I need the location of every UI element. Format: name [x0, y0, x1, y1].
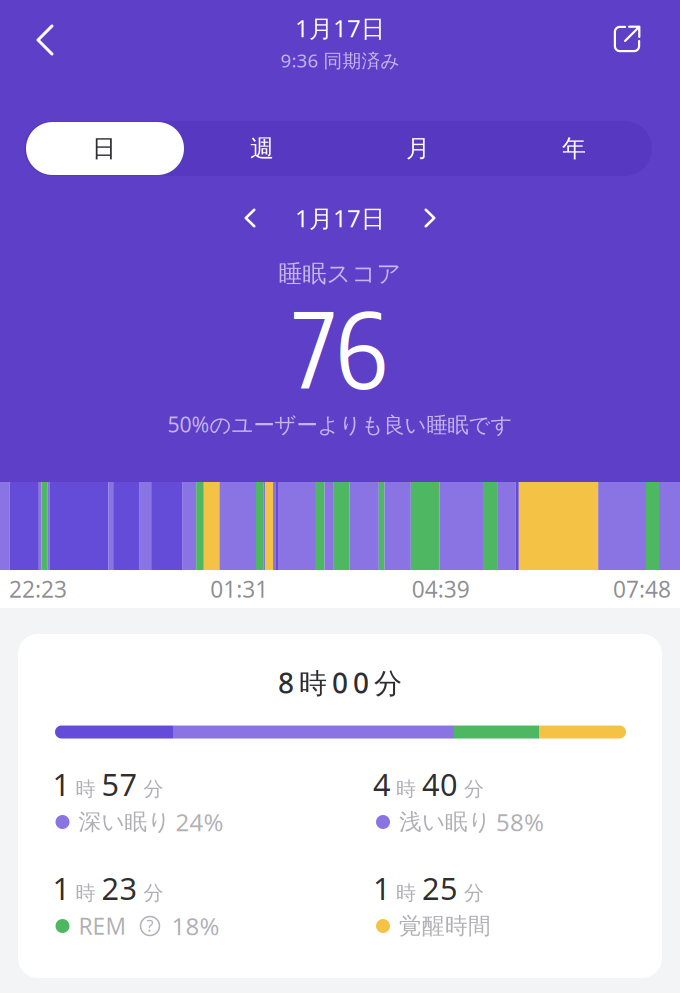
staticText: 睡眠スコア	[278, 259, 401, 288]
staticText: 日	[92, 134, 116, 163]
staticText: 分	[464, 881, 484, 905]
staticText: 浅い眠り	[399, 808, 491, 836]
staticText: 1	[52, 868, 70, 908]
staticText: 時	[396, 777, 416, 801]
staticText: ?	[146, 915, 153, 936]
staticText: 分	[143, 777, 163, 801]
staticText: 76	[293, 282, 386, 412]
staticText: 01:31	[210, 574, 268, 604]
staticText: 年	[562, 134, 586, 163]
button[interactable]: Next day	[410, 198, 450, 238]
staticText: 1月17日	[295, 202, 385, 234]
staticText: 時	[75, 881, 95, 905]
button[interactable]: Previous day	[230, 198, 270, 238]
staticText: 覚醒時間	[399, 912, 491, 940]
staticText: 40	[422, 764, 458, 804]
staticText: 分	[464, 777, 484, 801]
staticText: 07:48	[613, 574, 671, 604]
staticText: 1	[52, 764, 70, 804]
staticText: 23	[101, 868, 137, 908]
staticText: 18%	[171, 910, 219, 942]
button[interactable]: Share	[592, 9, 662, 69]
staticText: 1	[373, 868, 391, 908]
staticText: 週	[250, 134, 274, 163]
button[interactable]: 月	[340, 121, 496, 176]
staticText: 4	[373, 764, 391, 804]
staticText: 50%のユーザーよりも良い睡眠です	[167, 410, 512, 438]
staticText: 24%	[175, 806, 223, 838]
staticText: 57	[101, 764, 137, 804]
staticText: 22:23	[9, 574, 67, 604]
staticText: 深い眠り	[78, 808, 170, 836]
button[interactable]: 日	[24, 121, 184, 176]
staticText: REM	[78, 911, 126, 941]
button[interactable]: 年	[496, 121, 652, 176]
staticText: 9:36 同期済み	[280, 48, 399, 73]
staticText: 04:39	[412, 574, 470, 604]
staticText: 8時00分	[278, 664, 402, 701]
staticText: 時	[75, 777, 95, 801]
button[interactable]: 週	[184, 121, 340, 176]
staticText: 月	[406, 134, 430, 163]
button[interactable]: Back	[9, 10, 81, 70]
staticText: 1月17日	[295, 12, 385, 44]
staticText: 時	[396, 881, 416, 905]
staticText: 分	[143, 881, 163, 905]
staticText: 58%	[496, 806, 544, 838]
staticText: 25	[422, 868, 458, 908]
